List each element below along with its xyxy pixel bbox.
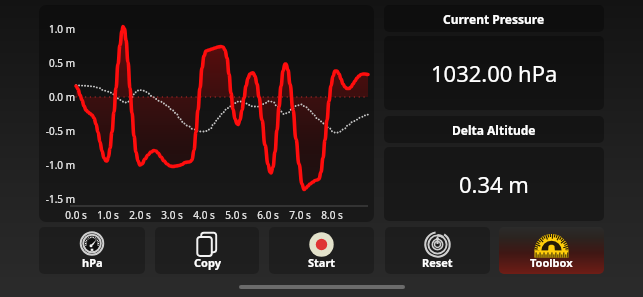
button[interactable]: Copy data xyxy=(155,227,259,274)
staticText: 8.0 s xyxy=(318,208,346,222)
staticText: Delta Altitude xyxy=(452,122,536,138)
staticText: 4.0 s xyxy=(190,208,218,222)
button[interactable]: Reset measurement xyxy=(385,227,490,274)
staticText: Copy xyxy=(194,255,221,270)
staticText: 2.0 s xyxy=(126,208,154,222)
staticText: 1.0 s xyxy=(94,208,122,222)
staticText: 1.0 m xyxy=(45,22,75,36)
staticText: 0.0 m xyxy=(45,90,75,104)
staticText: Reset xyxy=(422,255,453,270)
staticText: -1.5 m xyxy=(45,192,75,206)
staticText: 0.0 s xyxy=(62,208,90,222)
button[interactable]: Show pressure units xyxy=(39,227,145,274)
staticText: 0.34 m xyxy=(459,169,529,199)
staticText: Current Pressure xyxy=(443,11,545,27)
staticText: -0.5 m xyxy=(45,124,75,138)
staticText: 3.0 s xyxy=(158,208,186,222)
staticText: Toolbox xyxy=(530,255,573,270)
staticText: Start xyxy=(308,255,336,270)
staticText: 1032.00 hPa xyxy=(431,58,558,88)
staticText: 5.0 s xyxy=(222,208,250,222)
button[interactable]: Open toolbox xyxy=(499,227,604,274)
button[interactable]: Start recording xyxy=(269,227,374,274)
staticText: hPa xyxy=(82,255,103,270)
staticText: 7.0 s xyxy=(286,208,314,222)
staticText: 6.0 s xyxy=(254,208,282,222)
staticText: 0.5 m xyxy=(45,56,75,70)
staticText: -1.0 m xyxy=(45,158,75,172)
